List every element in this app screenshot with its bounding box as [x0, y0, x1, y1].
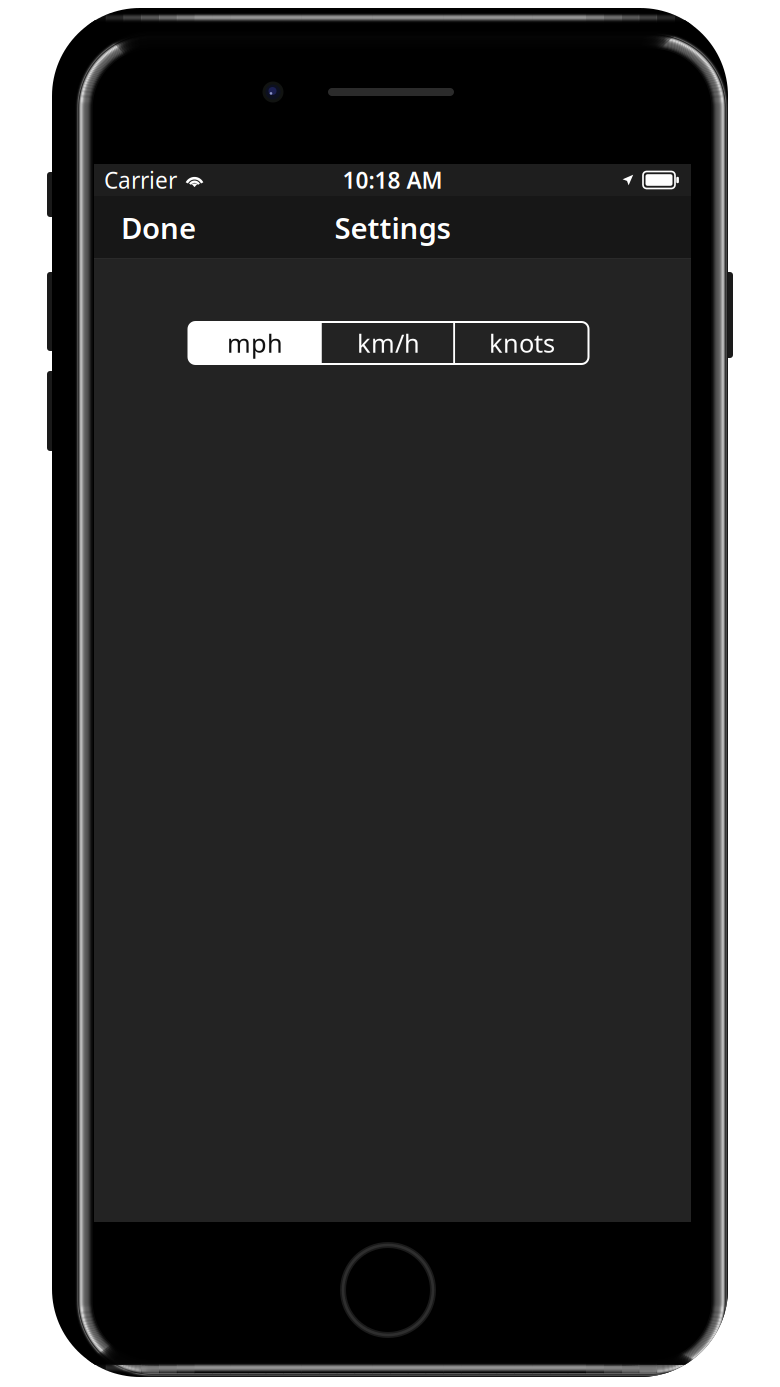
button[interactable]: km/h [322, 322, 455, 364]
staticText: knots [489, 326, 555, 360]
staticText: Done [121, 208, 196, 247]
button[interactable]: knots [455, 322, 589, 364]
staticText: mph [227, 326, 283, 360]
button[interactable]: mph [188, 322, 322, 364]
button[interactable]: Done [112, 200, 205, 255]
staticText: km/h [357, 326, 420, 360]
staticText: 10:18 AM [342, 165, 442, 195]
staticText: Settings [334, 208, 450, 247]
staticText: Carrier [104, 165, 177, 195]
